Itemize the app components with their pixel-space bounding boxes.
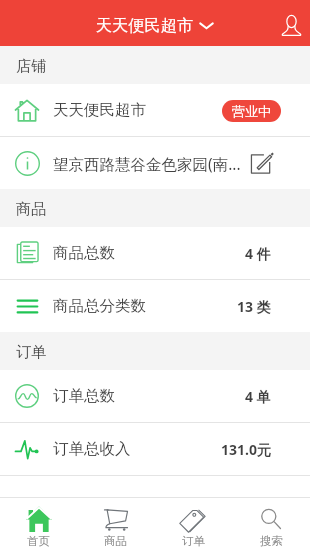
button[interactable]: 订单 — [154, 498, 232, 550]
staticText: 店铺 — [16, 57, 46, 76]
button[interactable]: 天天便民超市 — [0, 84, 310, 136]
staticText: 商品 — [104, 534, 127, 548]
button[interactable]: 商品 — [77, 498, 154, 550]
button[interactable]: 订单总收入 — [0, 423, 310, 475]
button[interactable]: 首页 — [0, 498, 77, 550]
staticText: 131.0元 — [221, 440, 271, 459]
staticText: 搜索 — [260, 534, 283, 548]
staticText: 商品 — [16, 200, 46, 219]
button[interactable]: Edit — [250, 151, 274, 175]
button[interactable]: 天天便民超市 — [96, 15, 214, 35]
button[interactable]: 搜索 — [232, 498, 310, 550]
staticText: 天天便民超市 — [53, 100, 212, 120]
staticText: 4 单 — [245, 387, 271, 406]
staticText: 商品总分类数 — [53, 296, 237, 316]
staticText: 首页 — [27, 534, 50, 548]
button[interactable]: 商品总数 — [0, 227, 310, 279]
staticText: 订单 — [16, 343, 46, 362]
staticText: 天天便民超市 — [96, 15, 194, 35]
staticText: 13 类 — [237, 297, 271, 316]
staticText: 订单总数 — [53, 386, 245, 406]
staticText: 订单 — [182, 534, 205, 548]
button[interactable]: 订单总数 — [0, 370, 310, 422]
staticText: 4 件 — [245, 244, 271, 263]
button[interactable]: 营业中 — [222, 100, 281, 122]
button[interactable]: 望京西路慧谷金色家园(南... — [0, 137, 310, 189]
staticText: 营业中 — [232, 103, 271, 119]
staticText: 商品总数 — [53, 243, 245, 263]
staticText: 订单总收入 — [53, 439, 221, 459]
staticText: 望京西路慧谷金色家园(南... — [53, 153, 247, 174]
button[interactable]: 商品总分类数 — [0, 280, 310, 332]
button[interactable]: Profile — [266, 0, 310, 46]
